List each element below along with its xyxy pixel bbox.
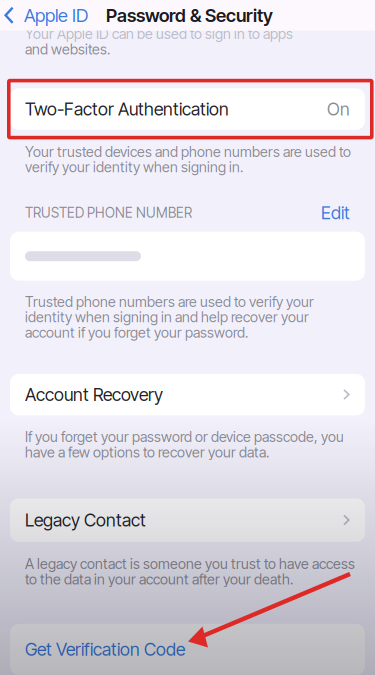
button[interactable]: Get Verification Code [0,0,375,51]
staticText: Edit [321,202,350,223]
staticText: account if you forget your password. [25,324,248,341]
button[interactable]: Apple ID [0,2,94,29]
staticText: Apple ID [24,4,88,26]
staticText: Get Verification Code [25,639,185,660]
staticText: Account Recovery [25,384,163,405]
staticText: Password & Security [106,4,273,26]
button[interactable]: Legacy Contact [0,0,375,43]
staticText: verify your identity when signing in. [25,158,243,176]
staticText: TRUSTED PHONE NUMBER [25,204,192,221]
staticText: A legacy contact is someone you trust to… [25,555,355,573]
staticText: to the data in your account after your d… [25,571,293,588]
staticText: On [327,98,350,120]
staticText: Trusted phone numbers are used to verify… [25,293,314,310]
button[interactable]: Edit [321,202,350,223]
staticText: Two-Factor Authentication [25,98,229,120]
staticText: and websites. [25,41,110,58]
staticText: have a few options to recover your data. [25,444,269,461]
staticText: Your Apple ID can be used to sign in to … [25,25,293,42]
staticText: Legacy Contact [25,509,146,531]
staticText: If you forget your password or device pa… [25,428,344,446]
staticText: Your trusted devices and phone numbers a… [25,143,351,160]
staticText: identity when signing in and help recove… [25,308,309,326]
button[interactable]: Account Recovery [0,0,375,41]
